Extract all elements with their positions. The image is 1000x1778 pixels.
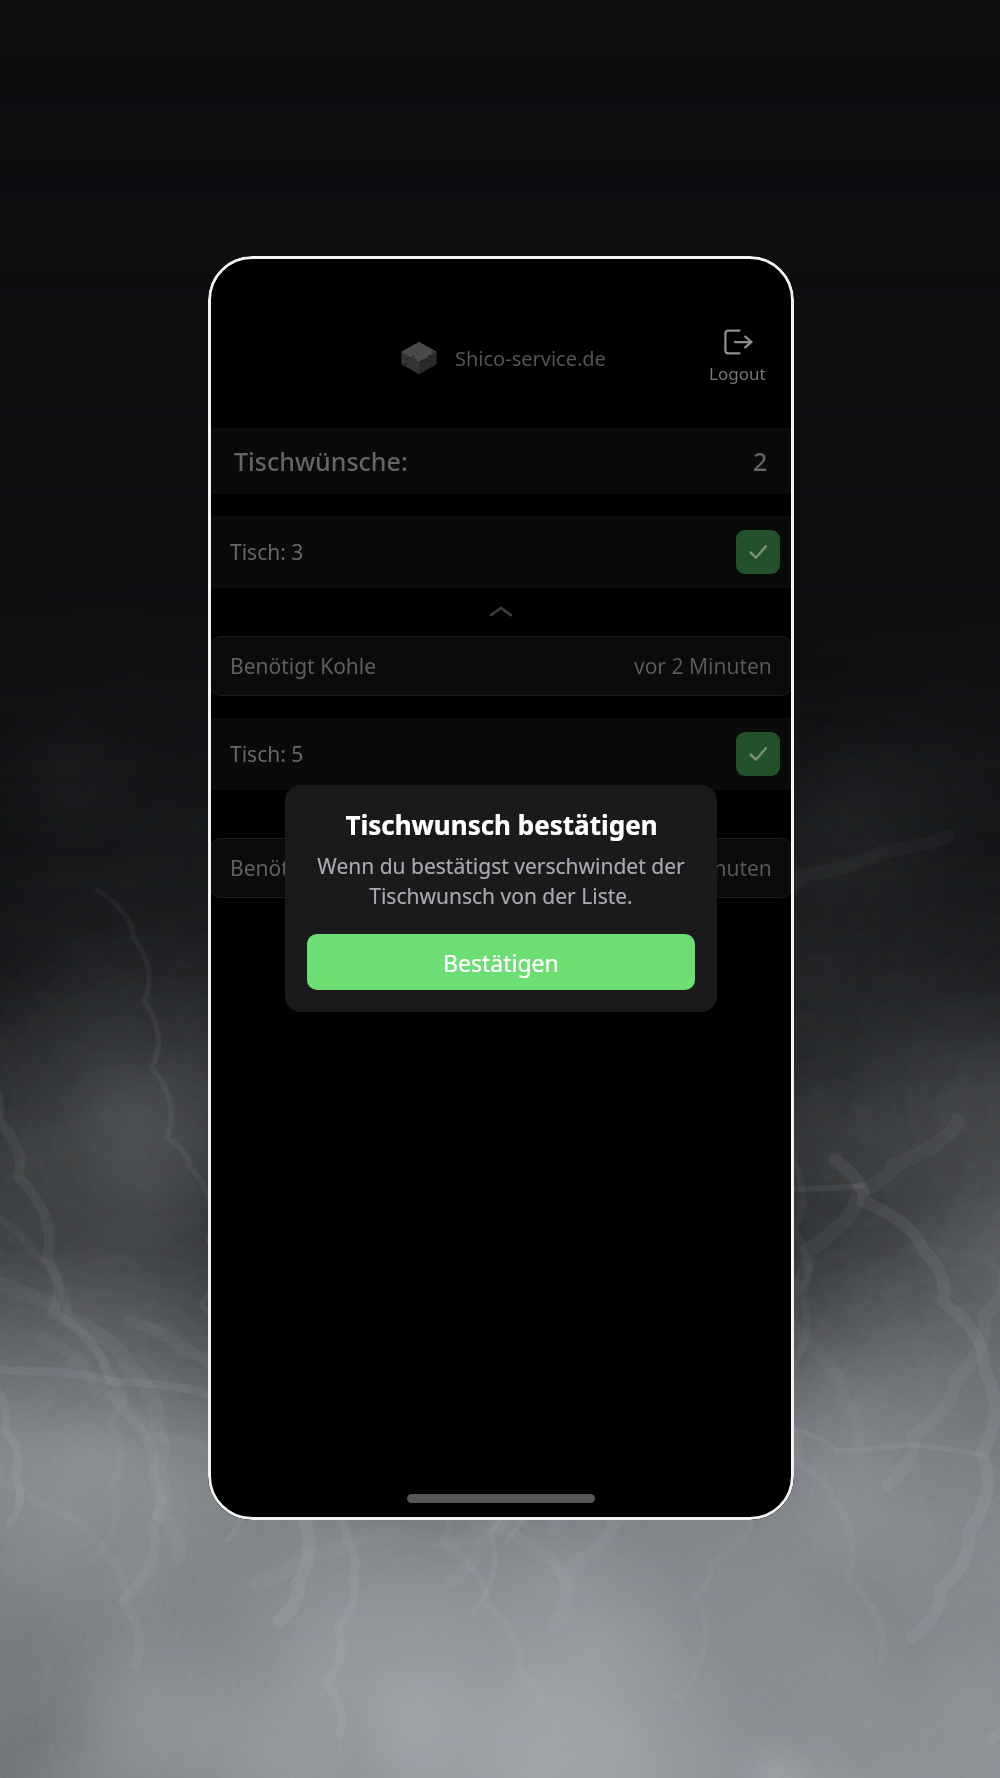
- button[interactable]: Logout: [699, 321, 776, 391]
- staticText: vor 3 Minuten: [634, 854, 772, 883]
- staticText: Tischwünsche:: [234, 444, 408, 478]
- button[interactable]: Benötigt Kellner: [210, 838, 792, 898]
- button[interactable]: Einklappen: [208, 588, 794, 636]
- staticText: 2: [753, 444, 768, 478]
- button[interactable]: Benötigt Kohle: [210, 636, 792, 696]
- button[interactable]: Bestätigen: [736, 732, 780, 776]
- staticText: Tisch: 5: [230, 740, 304, 769]
- other: Logout: [723, 327, 753, 357]
- staticText: Shico-service.de: [455, 345, 606, 372]
- staticText: Bestätigen: [443, 947, 559, 978]
- button[interactable]: Tisch: 5: [208, 718, 794, 790]
- button[interactable]: Tisch: 3: [208, 516, 794, 588]
- staticText: Tischwunsch bestätigen: [345, 807, 658, 842]
- button[interactable]: Bestätigen: [307, 934, 695, 990]
- staticText: Benötigt Kellner: [230, 854, 390, 883]
- staticText: Benötigt Kohle: [230, 652, 377, 681]
- button[interactable]: Bestätigen: [736, 530, 780, 574]
- staticText: vor 2 Minuten: [634, 652, 772, 681]
- staticText: Tisch: 3: [230, 538, 304, 567]
- staticText: Wenn du bestätigst verschwindet der Tisc…: [317, 852, 685, 910]
- button[interactable]: Tischwünsche:: [208, 428, 794, 494]
- staticText: Logout: [709, 362, 766, 385]
